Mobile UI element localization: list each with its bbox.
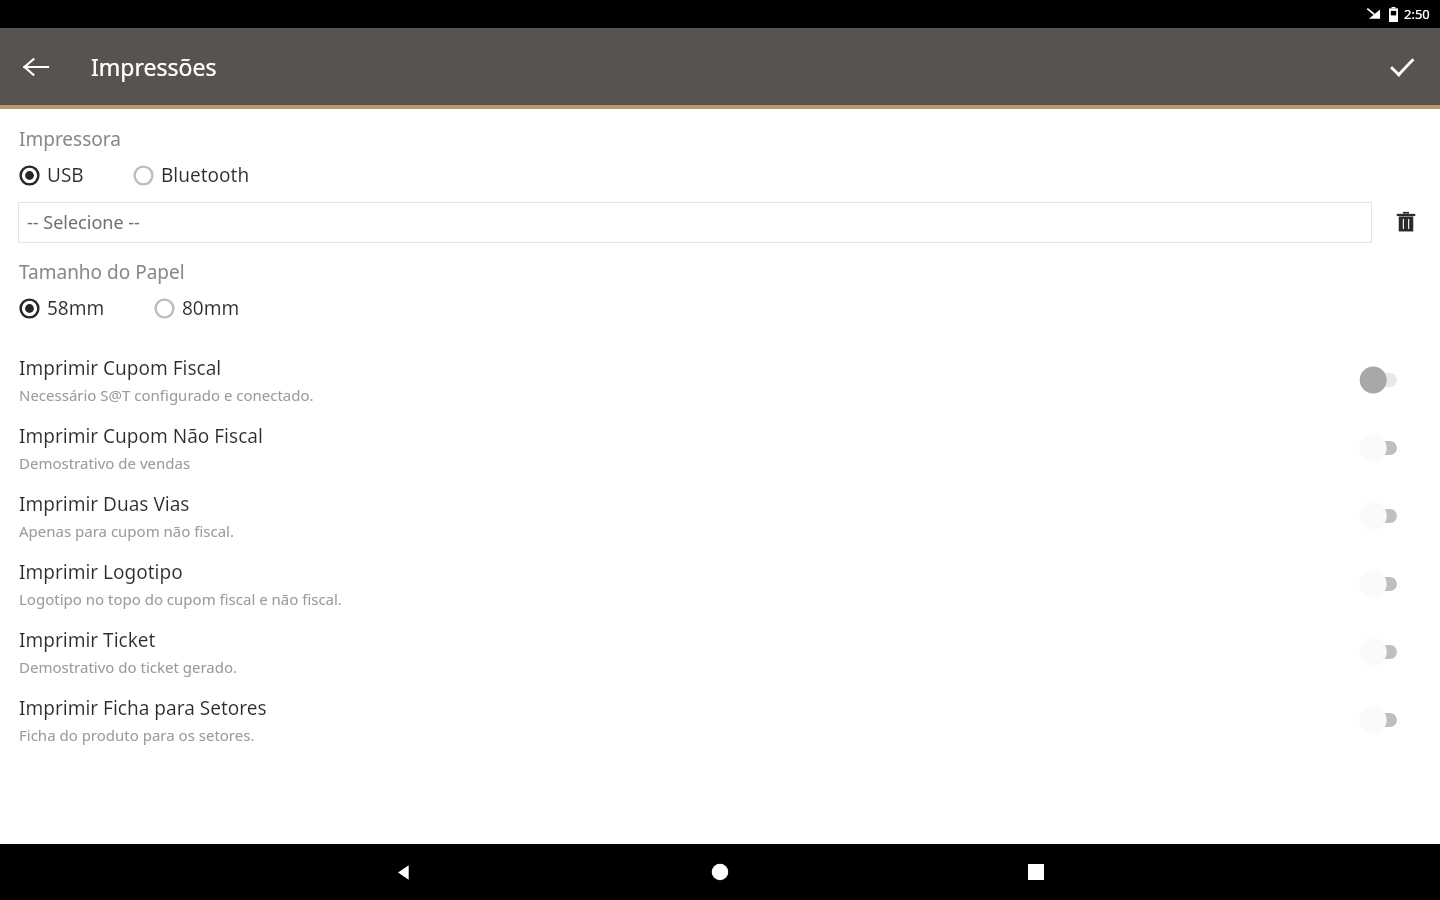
staticText: Imprimir Cupom Fiscal <box>19 355 222 381</box>
staticText: Imprimir Logotipo <box>19 559 183 585</box>
staticText: Imprimir Ficha para Setores <box>19 695 267 721</box>
staticText: Impressões <box>91 51 217 82</box>
staticText: Tamanho do Papel <box>19 259 185 285</box>
staticText: Bluetooth <box>161 162 250 188</box>
staticText: USB <box>47 162 84 188</box>
button[interactable]: Back <box>12 43 60 91</box>
staticText: 58mm <box>47 295 105 321</box>
staticText: Impressora <box>19 126 121 152</box>
button[interactable]: Toggle Imprimir Ticket <box>1360 635 1412 669</box>
staticText: Necessário S@T configurado e conectado. <box>19 385 314 405</box>
button[interactable]: Toggle Imprimir Cupom Não Fiscal <box>1360 431 1412 465</box>
button[interactable]: Imprimir Cupom Fiscal <box>0 346 1440 414</box>
staticText: 2:50 <box>1404 5 1430 23</box>
button[interactable]: USB <box>0 159 88 191</box>
button[interactable]: Confirm <box>1378 43 1426 91</box>
staticText: Logotipo no topo do cupom fiscal e não f… <box>19 589 342 609</box>
button[interactable]: Imprimir Ficha para Setores <box>0 686 1440 754</box>
button[interactable]: Toggle Imprimir Cupom Fiscal <box>1360 363 1412 397</box>
button[interactable]: Delete printer <box>1384 200 1428 244</box>
button[interactable]: Bluetooth <box>114 159 254 191</box>
staticText: Imprimir Cupom Não Fiscal <box>19 423 263 449</box>
button[interactable]: Toggle Imprimir Duas Vias <box>1360 499 1412 533</box>
button[interactable]: Imprimir Logotipo <box>0 550 1440 618</box>
staticText: Demostrativo do ticket gerado. <box>19 657 238 677</box>
button[interactable]: Imprimir Cupom Não Fiscal <box>0 414 1440 482</box>
button[interactable]: -- Selecione -- <box>18 202 1372 243</box>
staticText: 80mm <box>182 295 240 321</box>
button[interactable]: 80mm <box>135 292 244 324</box>
button[interactable]: Back <box>380 848 428 896</box>
button[interactable]: Imprimir Ticket <box>0 618 1440 686</box>
button[interactable]: Imprimir Duas Vias <box>0 482 1440 550</box>
button[interactable]: 58mm <box>0 292 109 324</box>
button[interactable]: Home <box>696 848 744 896</box>
staticText: -- Selecione -- <box>27 210 140 235</box>
staticText: Ficha do produto para os setores. <box>19 725 255 745</box>
staticText: Apenas para cupom não fiscal. <box>19 521 234 541</box>
staticText: Imprimir Duas Vias <box>19 491 190 517</box>
staticText: Imprimir Ticket <box>19 627 156 653</box>
button[interactable]: Toggle Imprimir Logotipo <box>1360 567 1412 601</box>
button[interactable]: Recent apps <box>1012 848 1060 896</box>
button[interactable]: Toggle Imprimir Ficha para Setores <box>1360 703 1412 737</box>
staticText: Demostrativo de vendas <box>19 453 191 473</box>
